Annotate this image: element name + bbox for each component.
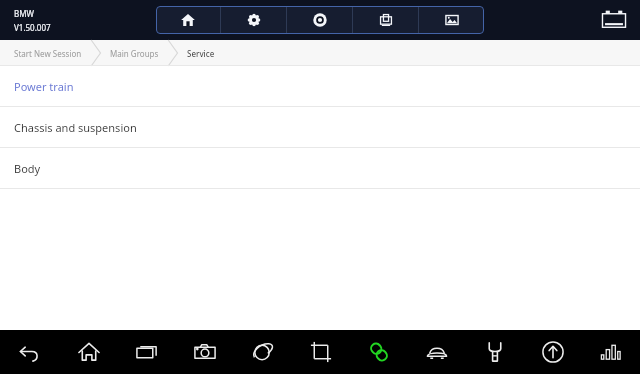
button[interactable]: Print report — [353, 6, 418, 34]
button[interactable]: Record — [287, 6, 352, 34]
staticText: Start New Session — [14, 48, 82, 59]
button[interactable]: Crop — [292, 330, 350, 374]
button[interactable]: Screenshot — [419, 6, 484, 34]
button[interactable]: Power train — [0, 66, 640, 107]
button[interactable]: Main Groups — [104, 40, 165, 66]
button[interactable]: Tools — [466, 330, 524, 374]
button[interactable]: Chassis and suspension — [0, 107, 640, 148]
staticText: Main Groups — [110, 48, 159, 59]
button[interactable]: Body — [0, 148, 640, 189]
button[interactable]: Service — [181, 40, 221, 66]
button[interactable]: Upload — [524, 330, 582, 374]
button[interactable]: Home — [156, 6, 220, 34]
staticText: Body — [14, 161, 41, 176]
button[interactable]: Home — [59, 330, 118, 374]
button[interactable]: Start New Session — [8, 40, 88, 66]
staticText: Power train — [14, 79, 74, 94]
staticText: BMW — [14, 8, 34, 19]
button[interactable]: Battery voltage 12.5V — [598, 7, 630, 33]
button[interactable]: Signal — [582, 330, 640, 374]
staticText: Service — [187, 48, 215, 59]
button[interactable]: Vehicle — [408, 330, 466, 374]
button[interactable]: Recents — [118, 330, 176, 374]
button[interactable]: Camera — [176, 330, 234, 374]
staticText: Chassis and suspension — [14, 120, 137, 135]
staticText: V1.50.007 — [14, 22, 51, 33]
button[interactable]: Back — [0, 330, 59, 374]
button[interactable]: Settings — [221, 6, 286, 34]
button[interactable]: Browser — [234, 330, 292, 374]
button[interactable]: Connection — [350, 330, 408, 374]
